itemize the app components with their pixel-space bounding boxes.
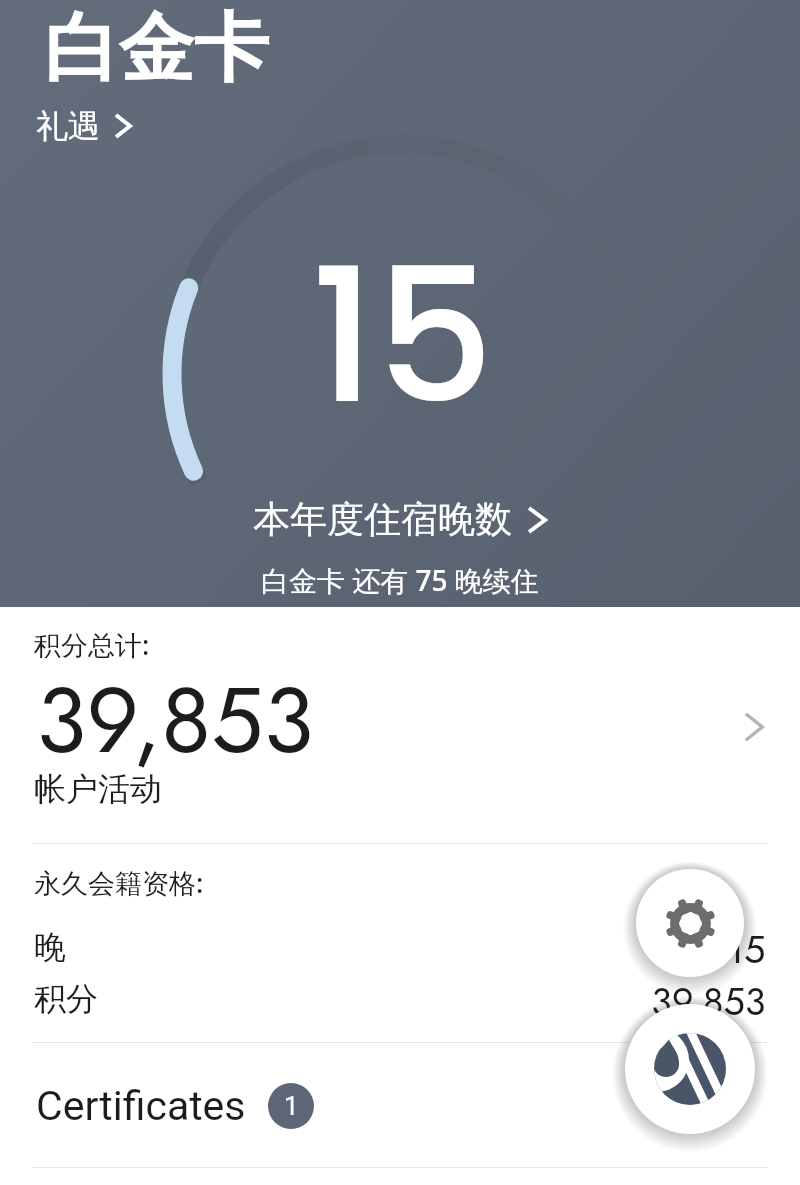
staticText: 白金卡 [44,2,269,96]
staticText: 39,853 [36,654,314,787]
staticText: 15 [727,922,766,977]
staticText: Certificates [36,1082,246,1130]
staticText: 39,853 [651,974,766,1029]
staticText: 帐户活动 [34,769,162,809]
staticText: 1 [284,1091,299,1121]
staticText: 15 [311,207,494,466]
staticText: 永久会籍资格: [34,864,204,901]
button[interactable]: 本年度住宿晚数 [253,496,547,543]
button[interactable]: Settings [617,850,763,996]
button[interactable]: Certificates [0,1043,800,1168]
staticText: 积分 [34,979,98,1019]
staticText: 白金卡 还有 75 晚续住 [261,561,539,599]
button[interactable]: 积分总计: [0,607,800,829]
button[interactable]: ALL loyalty program [605,984,775,1154]
staticText: 本年度住宿晚数 [253,496,512,543]
staticText: 晚 [34,927,66,967]
staticText: 礼遇 [36,106,100,146]
staticText: 积分总计: [34,626,150,663]
button[interactable]: 礼遇 [36,106,132,146]
